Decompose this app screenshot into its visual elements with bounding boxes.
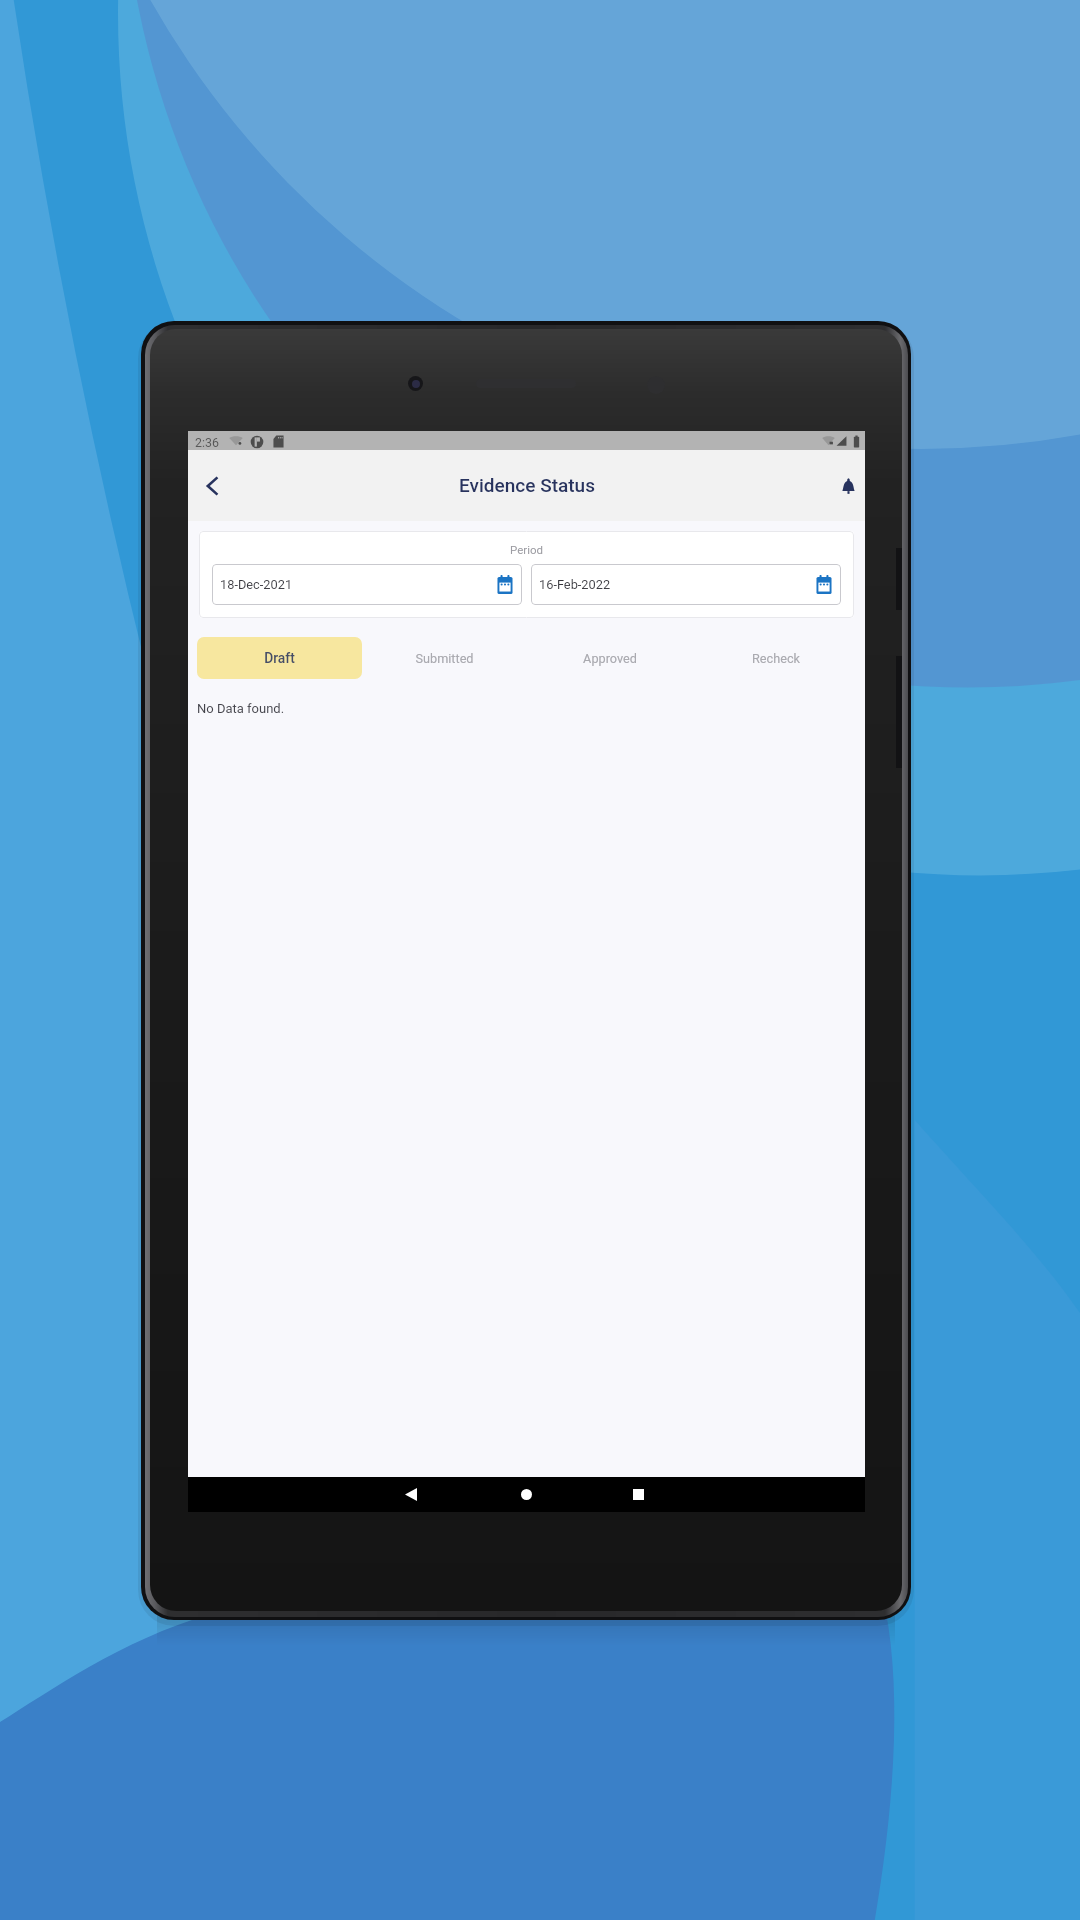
button[interactable]: Draft (197, 637, 362, 679)
staticText: 18-Dec-2021 (220, 577, 293, 592)
button[interactable]: Notifications (832, 450, 865, 521)
button[interactable]: Approved (527, 637, 693, 679)
staticText: No Data found. (197, 701, 285, 716)
staticText: Recheck (752, 651, 800, 666)
staticText: Period (510, 543, 544, 556)
staticText: 16-Feb-2022 (539, 577, 611, 592)
staticText: 2:36 (195, 435, 219, 450)
staticText: Submitted (415, 651, 474, 666)
button[interactable]: Submitted (362, 637, 527, 679)
staticText: Draft (264, 650, 295, 666)
button[interactable]: 16-Feb-2022 (531, 564, 841, 605)
staticText: Approved (583, 651, 637, 666)
staticText: Evidence Status (459, 474, 595, 496)
button[interactable]: Recheck (693, 637, 859, 679)
button[interactable]: Recents (622, 1477, 654, 1512)
button[interactable]: Back (395, 1477, 427, 1512)
button[interactable]: 18-Dec-2021 (212, 564, 522, 605)
button[interactable]: Back (192, 450, 232, 521)
button[interactable]: Home (510, 1477, 542, 1512)
